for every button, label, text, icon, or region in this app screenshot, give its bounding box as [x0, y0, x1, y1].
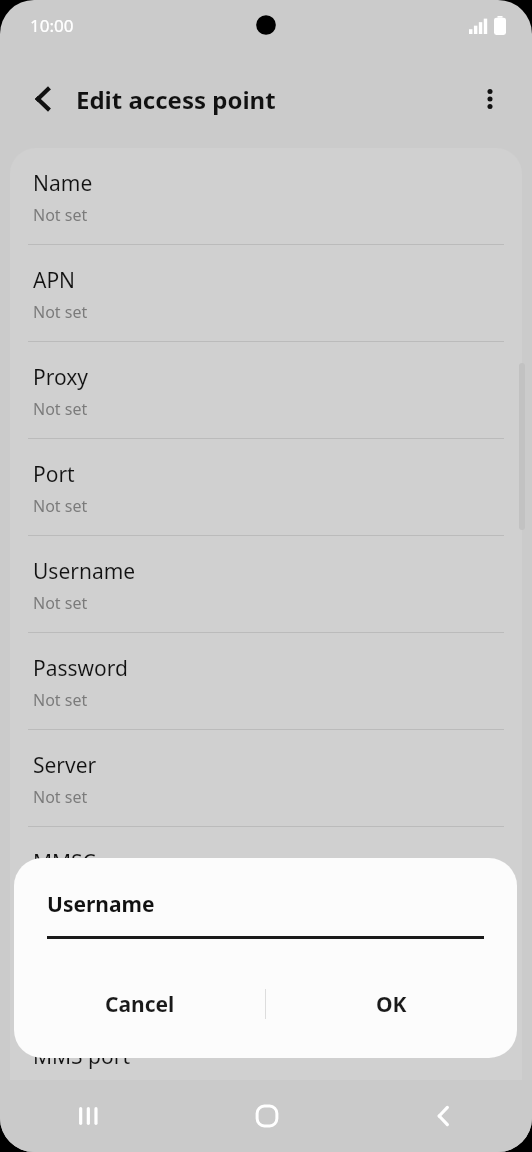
staticText: APN — [33, 266, 76, 295]
staticText: Not set — [33, 689, 88, 711]
staticText: Not set — [33, 204, 88, 226]
staticText: Not set — [33, 398, 88, 420]
button[interactable]: MMS port — [10, 1021, 522, 1080]
staticText: Port — [33, 460, 75, 489]
staticText: Cancel — [105, 990, 175, 1019]
button[interactable]: More options — [466, 75, 514, 123]
button[interactable]: Proxy — [10, 342, 522, 438]
button[interactable]: Port — [10, 439, 522, 535]
staticText: Username — [33, 557, 136, 586]
staticText: Not set — [33, 883, 88, 905]
staticText: Edit access point — [76, 83, 276, 116]
staticText: OK — [376, 990, 407, 1019]
staticText: Password — [33, 654, 128, 683]
staticText: Username — [47, 890, 155, 919]
button[interactable]: Recent apps — [0, 1080, 178, 1152]
staticText: Server — [33, 751, 97, 780]
button[interactable]: APN — [10, 245, 522, 341]
staticText: Name — [33, 169, 93, 198]
button[interactable]: Cancel — [14, 968, 265, 1040]
button[interactable]: OK — [266, 968, 517, 1040]
button[interactable]: Home — [178, 1080, 355, 1152]
button[interactable]: Server — [10, 730, 522, 826]
staticText: Not set — [33, 495, 88, 517]
button[interactable]: MMSC — [10, 827, 522, 923]
staticText: Not set — [33, 786, 88, 808]
button[interactable]: Password — [10, 633, 522, 729]
button[interactable]: Back — [20, 75, 68, 123]
button[interactable]: Back — [355, 1080, 532, 1152]
staticText: MMS port — [33, 1042, 130, 1071]
staticText: Proxy — [33, 363, 89, 392]
button[interactable]: Username — [10, 536, 522, 632]
staticText: Not set — [33, 301, 88, 323]
staticText: MMSC — [33, 848, 96, 877]
button[interactable]: Name — [10, 148, 522, 244]
staticText: Not set — [33, 592, 88, 614]
staticText: 10:00 — [30, 14, 74, 37]
button[interactable]: MMS proxy — [10, 924, 522, 1020]
